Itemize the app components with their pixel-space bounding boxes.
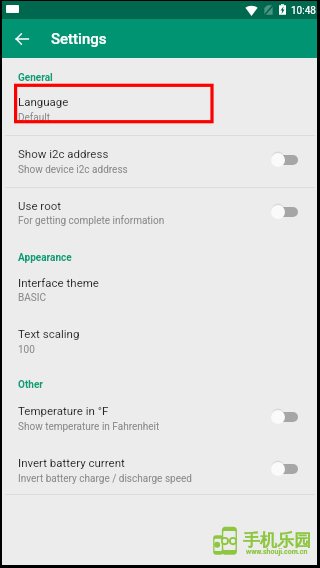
staticText: BASIC: [18, 292, 46, 304]
staticText: Interface theme: [18, 276, 99, 289]
staticText: www.shouji.com.cn: [246, 548, 308, 556]
staticText: Show device i2c address: [18, 164, 128, 176]
staticText: Invert battery current: [18, 456, 125, 469]
button[interactable]: Toggle: [271, 409, 301, 427]
staticText: Text scaling: [18, 327, 80, 340]
staticText: Use root: [18, 199, 62, 212]
staticText: Other: [18, 379, 43, 391]
staticText: Show temperature in Fahrenheit: [18, 421, 160, 433]
staticText: 100: [18, 344, 35, 356]
button[interactable]: Toggle: [271, 461, 301, 479]
button[interactable]: Use root: [2, 189, 317, 238]
staticText: For getting complete information: [18, 215, 165, 227]
staticText: Invert battery charge / discharge speed: [18, 473, 192, 485]
button[interactable]: Toggle: [271, 152, 301, 170]
button[interactable]: Interface theme: [2, 267, 317, 309]
button[interactable]: Back: [10, 19, 34, 58]
staticText: Appearance: [18, 252, 72, 264]
staticText: Settings: [51, 30, 107, 48]
staticText: General: [18, 72, 53, 84]
staticText: Temperature in °F: [18, 404, 109, 417]
button[interactable]: Text scaling: [2, 318, 317, 360]
button[interactable]: Temperature in °F: [2, 395, 317, 444]
staticText: Show i2c address: [18, 147, 109, 160]
staticText: Default: [18, 112, 50, 124]
button[interactable]: Show i2c address: [2, 137, 317, 186]
button[interactable]: Language: [2, 85, 317, 123]
staticText: 手机乐园: [243, 530, 311, 551]
staticText: 10:48: [291, 5, 316, 17]
button[interactable]: Invert battery current: [2, 447, 317, 496]
button[interactable]: Toggle: [271, 204, 301, 222]
staticText: Language: [18, 95, 69, 108]
